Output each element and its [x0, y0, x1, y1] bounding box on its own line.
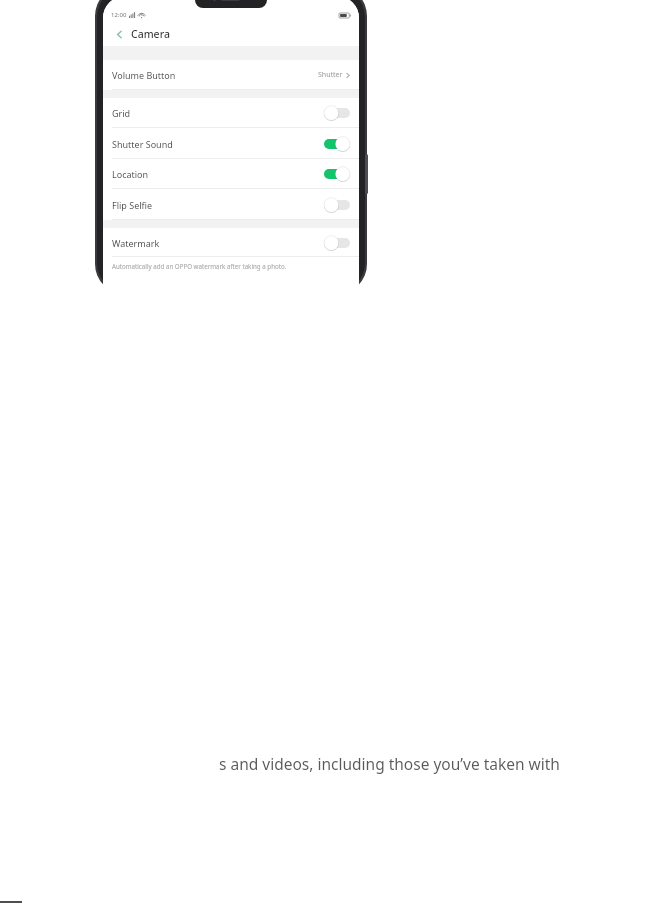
staticText: Shutter Sound [112, 138, 173, 150]
button[interactable]: Flip Selfie [103, 189, 359, 220]
button[interactable]: Watermark [103, 228, 359, 257]
button[interactable]: Back [111, 26, 127, 42]
staticText: Volume Button [112, 69, 176, 81]
staticText: s and videos, including those you’ve tak… [219, 753, 560, 774]
staticText: Automatically add an OPPO watermark afte… [112, 262, 287, 270]
button[interactable]: Shutter Sound toggle [324, 136, 350, 152]
staticText: Camera [131, 27, 170, 41]
button[interactable]: Shutter Sound [103, 128, 359, 159]
button[interactable]: Location [103, 159, 359, 189]
staticText: Grid [112, 107, 131, 119]
button[interactable]: Grid toggle [324, 105, 350, 121]
staticText: Flip Selfie [112, 199, 153, 211]
button[interactable]: Volume Button [103, 60, 359, 90]
button[interactable]: Location toggle [324, 166, 350, 182]
button[interactable]: Watermark toggle [324, 235, 350, 251]
staticText: 12:00 [111, 11, 127, 19]
button[interactable]: Flip Selfie toggle [324, 197, 350, 213]
button[interactable]: Grid [103, 98, 359, 128]
staticText: Watermark [112, 237, 160, 249]
staticText: Shutter [318, 70, 343, 80]
staticText: Location [112, 168, 149, 180]
